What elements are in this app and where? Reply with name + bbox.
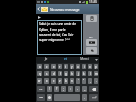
button[interactable]: t [64, 64, 68, 69]
button[interactable]: ; [61, 86, 66, 92]
button[interactable]: " [82, 78, 86, 84]
button[interactable]: k [82, 71, 86, 76]
button[interactable]: More suggestions [94, 57, 99, 63]
button[interactable]: s [44, 71, 49, 76]
staticText: a [39, 65, 41, 69]
staticText: " [83, 79, 85, 83]
staticText: ? [56, 87, 58, 91]
button[interactable]: Attach [86, 47, 97, 54]
button[interactable]: et [56, 57, 75, 63]
staticText: y [71, 65, 73, 69]
staticText: f [60, 72, 61, 76]
staticText: ! [49, 87, 50, 91]
staticText: 15:35 [89, 0, 98, 4]
button[interactable]: f [58, 71, 62, 76]
staticText: c [53, 79, 55, 83]
staticText: v [59, 79, 61, 83]
button[interactable]: ' [76, 78, 80, 84]
button[interactable]: _ [82, 86, 87, 92]
button[interactable]: - [75, 86, 80, 92]
button[interactable]: . [94, 78, 98, 84]
button[interactable]: l [88, 71, 92, 76]
button[interactable]: Emoji [47, 94, 52, 101]
button[interactable]: ABC [37, 94, 45, 101]
button[interactable]: r [58, 64, 62, 69]
button[interactable]: Salut je suis une amie de Kylian, il me … [37, 20, 82, 55]
staticText: , [90, 79, 91, 83]
button[interactable]: , [88, 78, 92, 84]
staticText: u [77, 65, 79, 69]
staticText: 0/1 [89, 35, 93, 38]
staticText: p [95, 65, 97, 69]
button[interactable]: Merci [75, 57, 94, 63]
button[interactable]: . [82, 94, 87, 101]
button[interactable]: e [51, 64, 56, 69]
other: Back [37, 6, 40, 12]
button[interactable]: Enter [89, 94, 98, 101]
button[interactable]: x [44, 78, 49, 84]
button[interactable]: y [70, 64, 74, 69]
button[interactable]: d [51, 71, 56, 76]
staticText: 1/3 [39, 88, 43, 91]
staticText: e [53, 65, 55, 69]
staticText: b [65, 79, 67, 83]
button[interactable]: Je [36, 57, 56, 63]
staticText: x [46, 79, 48, 83]
button[interactable]: i [82, 64, 86, 69]
button[interactable]: b [64, 78, 68, 84]
button[interactable]: j [76, 71, 80, 76]
button[interactable]: ! [47, 86, 52, 92]
staticText: . [84, 96, 85, 100]
staticText: r [59, 65, 61, 69]
staticText: w [38, 79, 41, 83]
button[interactable]: a [37, 64, 42, 69]
button[interactable]: n [70, 78, 74, 84]
staticText: Nouveau message [50, 7, 80, 12]
button[interactable]: Contacts [86, 15, 97, 22]
button[interactable]: w [37, 78, 42, 84]
button[interactable]: c [51, 78, 56, 84]
staticText: g [65, 72, 67, 76]
staticText: . [96, 79, 97, 83]
button[interactable]: z [44, 64, 49, 69]
staticText: m [95, 72, 98, 76]
staticText: s [46, 72, 48, 76]
button[interactable]: o [88, 64, 92, 69]
button[interactable]: ? [54, 86, 59, 92]
staticText: h [71, 72, 73, 76]
button[interactable]: Back [36, 4, 99, 14]
button[interactable]: p [94, 64, 98, 69]
staticText: ; [63, 87, 64, 91]
staticText: q [39, 72, 41, 76]
staticText: Salut je suis une amie de Kylian, il me … [39, 22, 76, 42]
button[interactable]: g [64, 71, 68, 76]
button[interactable]: Insert smiley [86, 39, 97, 46]
button[interactable]: q [37, 71, 42, 76]
button[interactable]: Backspace [89, 86, 98, 92]
staticText: l [90, 72, 91, 76]
button[interactable]: 1/3 [37, 86, 45, 92]
staticText: j [78, 72, 79, 76]
staticText: ' [78, 79, 79, 83]
staticText: ABC [39, 96, 44, 99]
button[interactable]: v [58, 78, 62, 84]
staticText: n [71, 79, 73, 83]
staticText: k [83, 72, 85, 76]
staticText: z [46, 65, 48, 69]
staticText: : [70, 87, 71, 91]
staticText: t [65, 65, 67, 69]
staticText: i [84, 65, 85, 69]
button[interactable]: m [94, 71, 98, 76]
button[interactable]: : [68, 86, 73, 92]
button[interactable]: u [76, 64, 80, 69]
staticText: o [89, 65, 91, 69]
staticText: _ [84, 87, 86, 91]
staticText: d [53, 72, 55, 76]
staticText: - [77, 87, 78, 91]
button[interactable]: h [70, 71, 74, 76]
